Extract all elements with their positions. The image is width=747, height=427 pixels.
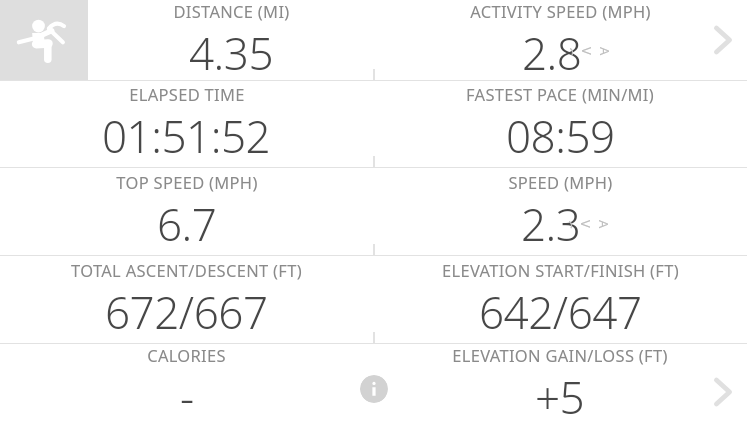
button[interactable]: TOP SPEED (MPH) — [0, 168, 373, 256]
staticText: 642/647 — [479, 282, 642, 342]
staticText: +5 — [535, 367, 585, 427]
button[interactable]: ELEVATION START/FINISH (FT) — [373, 256, 747, 344]
button[interactable]: CALORIES — [0, 344, 373, 427]
staticText: 08:59 — [506, 106, 615, 166]
button[interactable]: SPEED (MPH) — [373, 168, 747, 256]
staticText: 6.7 — [157, 194, 217, 254]
staticText: TOTAL ASCENT/DESCENT (FT) — [71, 259, 302, 281]
button[interactable]: ELAPSED TIME — [0, 81, 373, 168]
button[interactable]: DISTANCE (MI) — [88, 0, 374, 81]
staticText: DISTANCE (MI) — [173, 0, 290, 22]
staticText: ELEVATION START/FINISH (FT) — [442, 259, 679, 281]
staticText: 4.35 — [189, 23, 274, 81]
staticText: 01:51:52 — [102, 106, 271, 166]
staticText: ELAPSED TIME — [129, 83, 245, 105]
staticText: ACTIVITY SPEED (MPH) — [470, 0, 651, 22]
staticText: TOP SPEED (MPH) — [116, 171, 258, 193]
staticText: - — [180, 367, 194, 427]
staticText: 2.3 — [521, 194, 581, 254]
staticText: SPEED (MPH) — [508, 171, 613, 193]
button[interactable]: TOTAL ASCENT/DESCENT (FT) — [0, 256, 373, 344]
button[interactable]: ACTIVITY SPEED (MPH) — [374, 0, 747, 81]
staticText: 2.8 — [522, 23, 582, 81]
staticText: AVG — [570, 47, 614, 63]
button[interactable]: FASTEST PACE (MIN/MI) — [373, 81, 747, 168]
staticText: 672/667 — [105, 282, 268, 342]
staticText: CALORIES — [147, 344, 226, 366]
staticText: ELEVATION GAIN/LOSS (FT) — [452, 344, 668, 366]
button[interactable]: Activity type: climbing — [0, 0, 88, 81]
staticText: FASTEST PACE (MIN/MI) — [466, 83, 654, 105]
button[interactable]: Information — [360, 375, 388, 403]
button[interactable]: Next page — [699, 368, 747, 416]
button[interactable]: ELEVATION GAIN/LOSS (FT) — [373, 344, 747, 427]
button[interactable]: Next page — [699, 16, 747, 64]
staticText: AVG — [569, 220, 613, 236]
